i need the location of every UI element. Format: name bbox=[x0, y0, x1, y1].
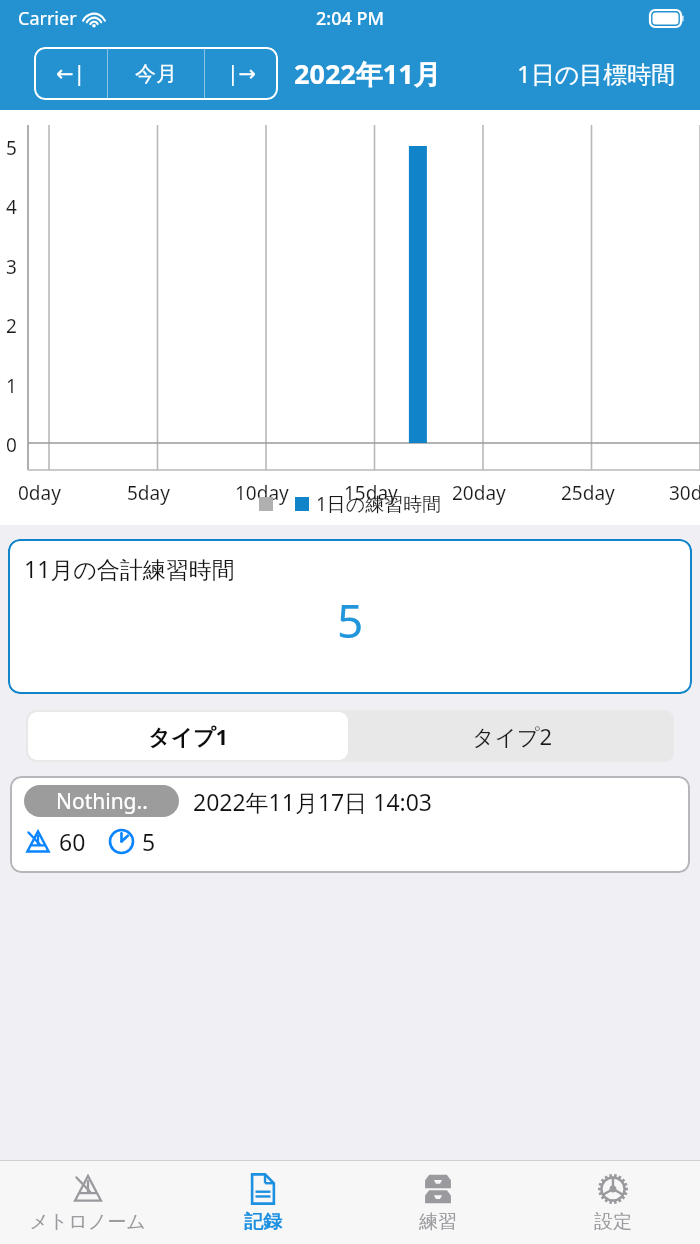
staticText: 5 bbox=[142, 826, 156, 857]
button[interactable]: タイプ2 bbox=[350, 710, 674, 762]
button[interactable]: Nothing.. bbox=[10, 776, 690, 873]
staticText: 今月 bbox=[135, 61, 177, 87]
staticText: 1日の練習時間 bbox=[316, 491, 442, 517]
staticText: 1日の目標時間 bbox=[517, 57, 676, 90]
staticText: 5 bbox=[337, 589, 364, 652]
button[interactable]: タイプ1 bbox=[28, 712, 348, 760]
staticText: タイプ2 bbox=[472, 721, 553, 751]
button[interactable]: 記録 bbox=[175, 1161, 350, 1244]
staticText: 15day bbox=[344, 480, 398, 506]
staticText: Nothing.. bbox=[56, 787, 148, 816]
staticText: 4 bbox=[6, 194, 17, 220]
staticText: 記録 bbox=[244, 1210, 282, 1234]
staticText: 3 bbox=[6, 254, 17, 280]
staticText: 2:04 PM bbox=[316, 6, 384, 31]
staticText: 設定 bbox=[594, 1210, 632, 1234]
staticText: 5day bbox=[127, 480, 170, 506]
staticText: 1 bbox=[6, 373, 17, 399]
staticText: 0day bbox=[18, 480, 61, 506]
button[interactable]: 1日の目標時間 bbox=[513, 51, 680, 96]
staticText: 0 bbox=[6, 432, 17, 458]
button[interactable]: 11月の合計練習時間 bbox=[8, 539, 692, 694]
button[interactable]: 今月 bbox=[108, 47, 204, 100]
button[interactable]: Previous month bbox=[34, 47, 107, 100]
staticText: 11月の合計練習時間 bbox=[24, 553, 235, 584]
staticText: |→ bbox=[227, 59, 257, 88]
staticText: 2022年11月 bbox=[294, 55, 441, 92]
staticText: 10day bbox=[235, 480, 289, 506]
button[interactable]: 練習 bbox=[350, 1161, 525, 1244]
staticText: 60 bbox=[59, 826, 86, 857]
staticText: ←| bbox=[56, 59, 86, 88]
staticText: 5 bbox=[6, 135, 17, 161]
button[interactable]: 設定 bbox=[525, 1161, 700, 1244]
staticText: 20day bbox=[452, 480, 506, 506]
staticText: Carrier bbox=[18, 6, 77, 31]
button[interactable]: メトロノーム bbox=[0, 1161, 175, 1244]
staticText: 練習 bbox=[419, 1210, 457, 1234]
staticText: 25day bbox=[561, 480, 615, 506]
button[interactable]: Next month bbox=[205, 47, 278, 100]
staticText: 2 bbox=[6, 313, 17, 339]
staticText: 30day bbox=[669, 480, 700, 506]
staticText: メトロノーム bbox=[29, 1210, 146, 1234]
staticText: タイプ1 bbox=[148, 721, 229, 751]
staticText: 2022年11月17日 14:03 bbox=[193, 786, 433, 817]
